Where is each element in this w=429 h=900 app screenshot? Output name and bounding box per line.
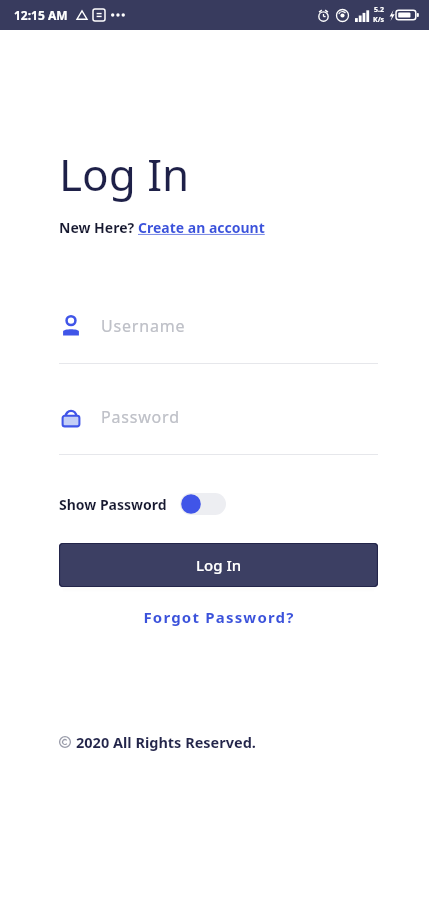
- staticText: Forgot Password?: [143, 607, 295, 627]
- staticText: 2020 All Rights Reserved.: [76, 732, 256, 752]
- button[interactable]: Password: [59, 400, 378, 455]
- button[interactable]: Log In: [59, 543, 378, 587]
- staticText: 12:15 AM: [14, 7, 68, 23]
- staticText: Show Password: [59, 495, 167, 514]
- staticText: New Here?: [59, 218, 138, 237]
- staticText: Log In: [196, 555, 242, 575]
- staticText: Create an account: [138, 218, 265, 237]
- staticText: 5.2: [374, 5, 384, 15]
- button[interactable]: Forgot Password?: [59, 607, 378, 627]
- other: Password: [59, 405, 83, 429]
- button[interactable]: Show Password toggle: [180, 493, 226, 515]
- staticText: Log In: [59, 144, 190, 204]
- staticText: Username: [101, 315, 186, 337]
- button[interactable]: Create an account: [138, 218, 265, 237]
- other: Username: [59, 314, 83, 338]
- staticText: K/s: [373, 15, 385, 25]
- button[interactable]: Show Password: [59, 493, 226, 515]
- staticText: Password: [101, 406, 180, 428]
- button[interactable]: Username: [59, 309, 378, 364]
